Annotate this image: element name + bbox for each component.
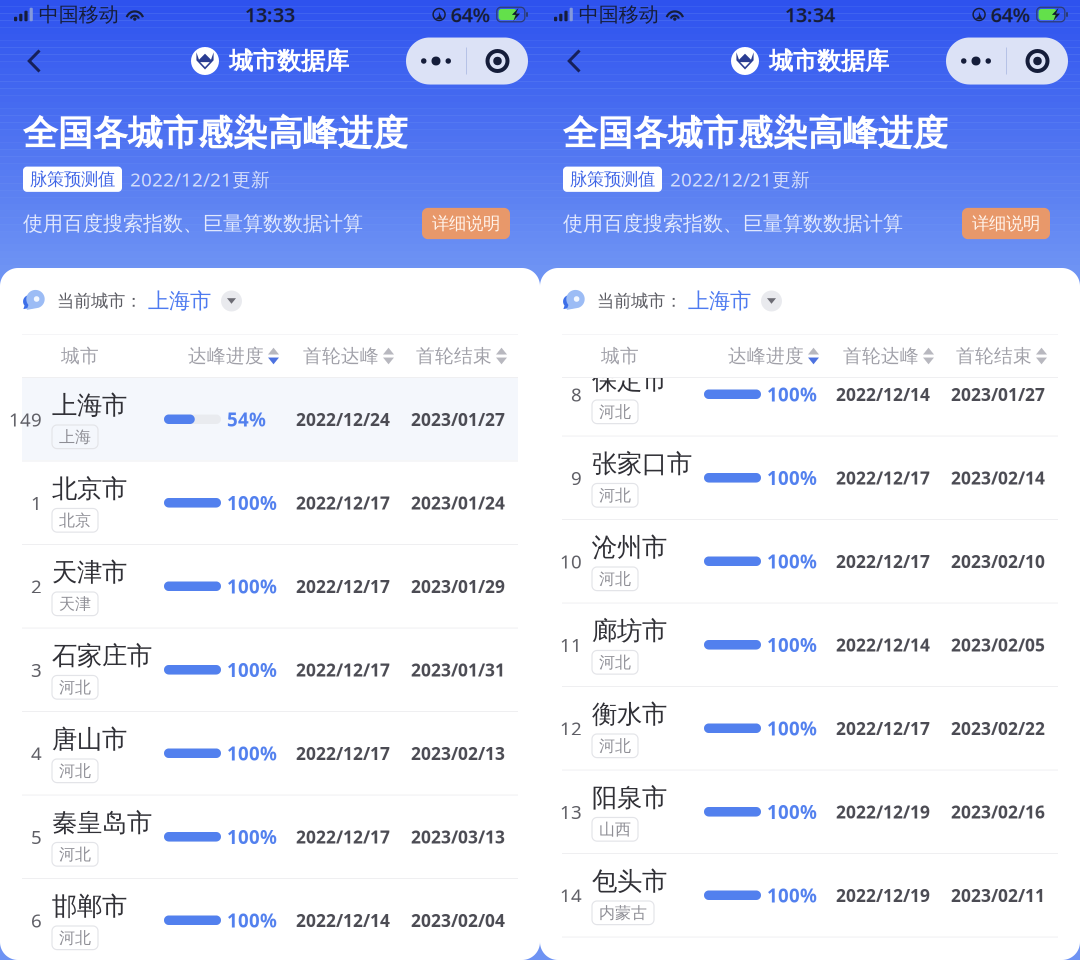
staticText: 2023/02/05 <box>951 633 1045 656</box>
staticText: 北京 <box>59 510 91 530</box>
button[interactable]: 6 <box>0 879 540 960</box>
button[interactable]: 当前城市： <box>540 268 1080 334</box>
staticText: 2022/12/17 <box>836 717 930 740</box>
staticText: 详细说明 <box>432 213 500 234</box>
button[interactable]: 达峰进度 <box>188 344 279 367</box>
staticText: 100% <box>767 465 817 490</box>
staticText: 2022/12/17 <box>836 550 930 573</box>
button[interactable]: 12 <box>540 687 1080 770</box>
staticText: 3 <box>31 657 42 682</box>
staticText: 1 <box>31 490 42 515</box>
staticText: 张家口市 <box>592 448 692 479</box>
staticText: 使用百度搜索指数、巨量算数数据计算 <box>563 211 903 236</box>
staticText: 达峰进度 <box>728 344 804 367</box>
button[interactable]: 当前城市： <box>0 268 540 334</box>
staticText: 2023/02/16 <box>951 800 1045 823</box>
staticText: 100% <box>227 741 277 766</box>
button[interactable]: 5 <box>0 795 540 879</box>
staticText: 2 <box>31 574 42 599</box>
staticText: 阳泉市 <box>592 782 667 813</box>
staticText: 100% <box>227 490 277 515</box>
button[interactable]: 9 <box>540 436 1080 520</box>
staticText: 北京市 <box>52 473 127 504</box>
staticText: 2022/12/17 <box>296 825 390 848</box>
staticText: 当前城市： <box>597 290 682 312</box>
staticText: 脉策预测值 <box>30 169 115 190</box>
button[interactable]: 首轮结束 <box>956 344 1047 367</box>
staticText: 首轮达峰 <box>303 344 379 367</box>
staticText: 2022/12/21更新 <box>670 167 810 192</box>
staticText: 河北 <box>599 736 631 756</box>
staticText: 2022/12/17 <box>296 491 390 514</box>
button[interactable]: 详细说明 <box>962 208 1050 239</box>
staticText: 2023/01/24 <box>411 491 505 514</box>
staticText: 城市 <box>61 344 99 367</box>
staticText: 5 <box>31 824 42 849</box>
button[interactable]: 11 <box>540 603 1080 687</box>
button[interactable]: 1 <box>0 461 540 545</box>
button[interactable]: 详细说明 <box>422 208 510 239</box>
staticText: 2023/01/27 <box>411 408 505 431</box>
staticText: 100% <box>767 382 817 407</box>
staticText: 保定市 <box>592 365 667 396</box>
staticText: 100% <box>227 908 277 933</box>
button[interactable]: 149 <box>0 378 540 461</box>
staticText: 详细说明 <box>972 213 1040 234</box>
staticText: 149 <box>9 407 42 432</box>
staticText: 内蒙古 <box>599 903 647 923</box>
staticText: 2023/02/04 <box>411 909 505 932</box>
button[interactable]: 8 <box>540 353 1080 436</box>
staticText: 64% <box>991 1 1031 28</box>
button[interactable]: 13 <box>540 770 1080 854</box>
staticText: 唐山市 <box>52 724 127 755</box>
staticText: 河北 <box>599 652 631 672</box>
button[interactable]: 2 <box>0 545 540 628</box>
staticText: 2023/02/14 <box>951 466 1045 489</box>
staticText: 中国移动 <box>39 2 119 27</box>
button[interactable]: 首轮达峰 <box>303 344 394 367</box>
staticText: 100% <box>767 883 817 908</box>
staticText: 100% <box>767 716 817 741</box>
staticText: 使用百度搜索指数、巨量算数数据计算 <box>23 211 363 236</box>
staticText: 2023/02/11 <box>951 884 1045 907</box>
staticText: 2022/12/17 <box>296 658 390 681</box>
staticText: 9 <box>571 465 582 490</box>
staticText: 上海市 <box>148 288 211 314</box>
button[interactable]: 首轮达峰 <box>843 344 934 367</box>
button[interactable]: More options and close <box>406 37 528 84</box>
staticText: 河北 <box>59 844 91 864</box>
staticText: 2022/12/14 <box>836 633 930 656</box>
staticText: 2023/02/22 <box>951 717 1045 740</box>
staticText: 10 <box>560 549 582 574</box>
staticText: 54% <box>227 407 266 432</box>
staticText: 城市数据库 <box>229 46 349 76</box>
button[interactable]: 3 <box>0 628 540 712</box>
staticText: 河北 <box>599 569 631 589</box>
staticText: 中国移动 <box>579 2 659 27</box>
staticText: 首轮结束 <box>416 344 492 367</box>
button[interactable]: Back <box>12 39 56 83</box>
staticText: 13:34 <box>785 1 835 28</box>
button[interactable]: More options and close <box>946 37 1068 84</box>
staticText: 石家庄市 <box>52 640 152 671</box>
staticText: 天津市 <box>52 557 127 588</box>
button[interactable]: 4 <box>0 712 540 795</box>
staticText: 2022/12/19 <box>836 800 930 823</box>
button[interactable]: 14 <box>540 854 1080 937</box>
button[interactable]: 10 <box>540 520 1080 603</box>
button[interactable]: 首轮结束 <box>416 344 507 367</box>
staticText: 河北 <box>599 485 631 505</box>
staticText: 首轮结束 <box>956 344 1032 367</box>
button[interactable]: 达峰进度 <box>728 344 819 367</box>
staticText: 4 <box>31 741 42 766</box>
staticText: 2022/12/17 <box>296 575 390 598</box>
staticText: 2023/03/13 <box>411 825 505 848</box>
staticText: 11 <box>560 632 582 657</box>
staticText: 脉策预测值 <box>570 169 655 190</box>
staticText: 河北 <box>59 928 91 948</box>
button[interactable]: Back <box>552 39 596 83</box>
staticText: 2022/12/14 <box>296 909 390 932</box>
staticText: 河北 <box>599 402 631 422</box>
staticText: 河北 <box>59 761 91 781</box>
staticText: 沧州市 <box>592 532 667 563</box>
